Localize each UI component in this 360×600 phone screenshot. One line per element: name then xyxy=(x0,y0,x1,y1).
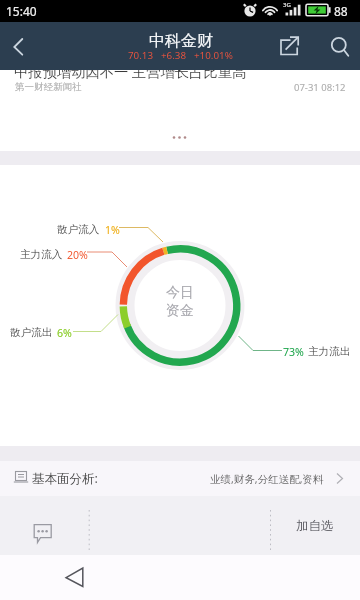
staticText: 业绩,财务,分红送配,资料 xyxy=(210,472,324,486)
staticText: 15:40 xyxy=(6,3,37,19)
staticText: 资金 xyxy=(166,302,194,320)
staticText: +6.38 xyxy=(161,49,187,62)
staticText: 散户流出 xyxy=(10,326,53,339)
button[interactable]: 基本面分析: xyxy=(0,461,360,496)
button[interactable]: 加自选 xyxy=(270,496,360,555)
staticText: 今日 xyxy=(166,284,194,302)
button[interactable]: 中报预增动因不一 主营增长占比重高 xyxy=(0,70,360,151)
staticText: 基本面分析: xyxy=(32,470,98,487)
staticText: 主力流入 xyxy=(20,248,63,261)
staticText: 6% xyxy=(57,326,72,340)
staticText: 第一财经新闻社 xyxy=(15,81,82,93)
staticText: +10.01% xyxy=(194,49,233,62)
staticText: 20% xyxy=(67,248,88,262)
staticText: 70.13 xyxy=(128,49,154,62)
button[interactable]: Back xyxy=(0,22,360,70)
staticText: 88 xyxy=(334,3,348,19)
staticText: 中报预增动因不一 主营增长占比重高 xyxy=(14,62,247,82)
button[interactable]: Share xyxy=(272,22,316,70)
staticText: 主力流出 xyxy=(308,345,351,358)
button[interactable]: Search xyxy=(318,22,360,70)
button[interactable]: Back xyxy=(56,555,94,600)
staticText: 07-31 08:12 xyxy=(294,81,346,94)
staticText: 散户流入 xyxy=(57,223,100,236)
staticText: 中科金财 xyxy=(149,31,213,51)
staticText: 1% xyxy=(105,223,120,237)
button[interactable]: Comments xyxy=(0,496,89,555)
staticText: 加自选 xyxy=(296,518,334,534)
staticText: 3G xyxy=(283,1,291,9)
staticText: 73% xyxy=(283,345,304,359)
